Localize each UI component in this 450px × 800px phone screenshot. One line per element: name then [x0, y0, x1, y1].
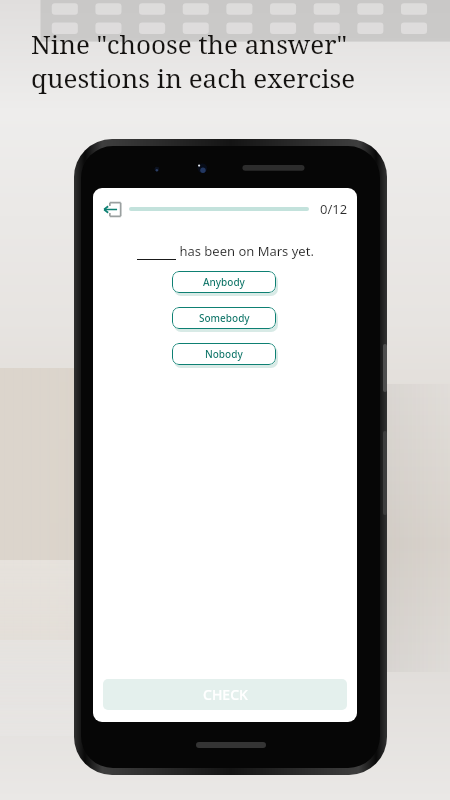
- button[interactable]: Nobody: [172, 343, 276, 365]
- staticText: Somebody: [199, 311, 250, 325]
- staticText: Anybody: [203, 275, 245, 289]
- button[interactable]: CHECK: [103, 679, 347, 710]
- staticText: 0/12: [320, 200, 348, 218]
- staticText: CHECK: [203, 685, 248, 704]
- staticText: Nine "choose the answer" questions in ea…: [31, 26, 434, 95]
- button[interactable]: Somebody: [172, 307, 276, 329]
- button[interactable]: Exit exercise: [98, 195, 126, 223]
- staticText: has been on Mars yet.: [176, 242, 314, 260]
- staticText: Nobody: [205, 347, 243, 361]
- button[interactable]: Anybody: [172, 271, 276, 293]
